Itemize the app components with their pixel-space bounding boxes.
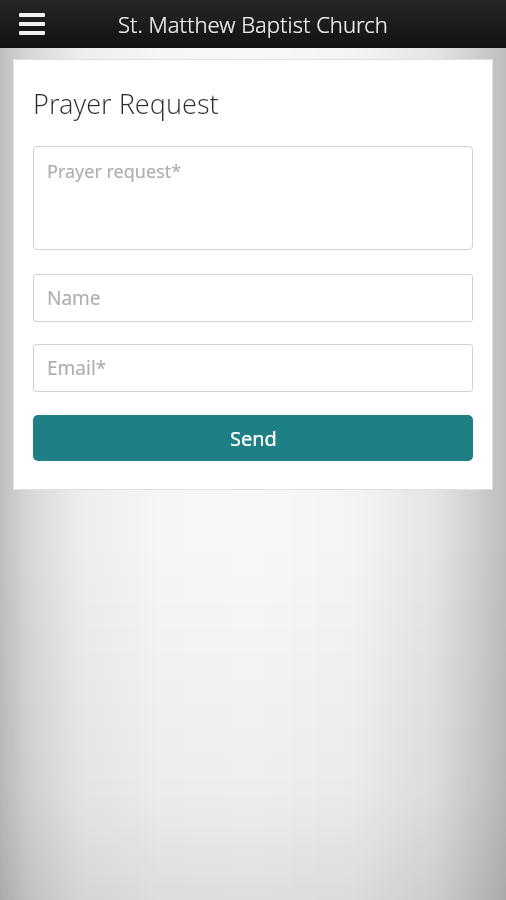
button[interactable]: Open navigation menu	[10, 2, 54, 46]
staticText: Email*	[47, 355, 107, 381]
button[interactable]: Prayer request*	[33, 146, 473, 250]
button[interactable]: Email*	[33, 344, 473, 392]
staticText: Prayer request*	[47, 159, 182, 184]
staticText: St. Matthew Baptist Church	[118, 9, 388, 39]
staticText: Prayer Request	[33, 85, 219, 122]
staticText: Name	[47, 285, 101, 311]
button[interactable]: Name	[33, 274, 473, 322]
button[interactable]: Send	[33, 415, 473, 461]
staticText: Send	[230, 425, 277, 452]
